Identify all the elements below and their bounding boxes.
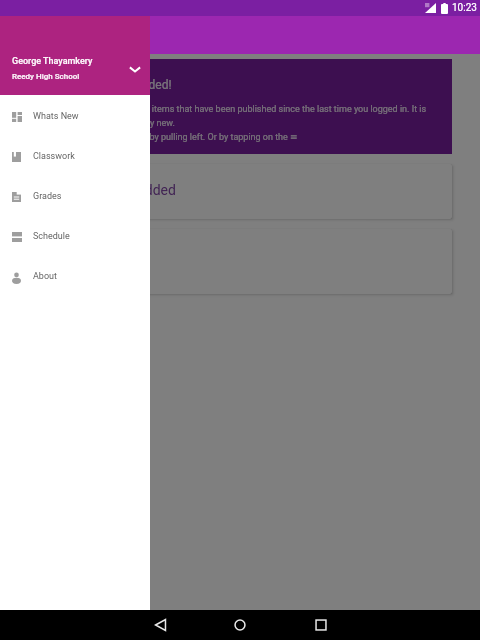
staticText: Whats New <box>33 111 79 122</box>
button[interactable]: Switch account <box>127 61 143 77</box>
staticText: These are all the brand new items that h… <box>40 104 427 142</box>
staticText: Some New Items Added! <box>40 78 172 92</box>
staticText: George Thayamkery <box>12 56 93 67</box>
button[interactable]: Grades <box>0 176 150 216</box>
staticText: Classwork <box>33 151 75 162</box>
staticText: Reedy High School <box>12 72 80 81</box>
button[interactable]: Home <box>232 617 248 633</box>
staticText: Schedule <box>33 231 70 242</box>
staticText: Grades <box>33 191 62 202</box>
button[interactable] <box>28 229 452 294</box>
button[interactable]: Recent apps <box>313 617 329 633</box>
staticText: 10:23 <box>452 2 477 14</box>
staticText: About <box>33 271 57 282</box>
button[interactable]: Classwork <box>0 136 150 176</box>
button[interactable]: No New Items Added <box>28 164 452 219</box>
button[interactable]: About <box>0 256 150 296</box>
button[interactable]: George Thayamkery <box>0 16 150 95</box>
button[interactable]: Schedule <box>0 216 150 256</box>
button[interactable]: Back <box>153 617 169 633</box>
staticText: No New Items Added <box>44 182 176 198</box>
button[interactable]: Whats New <box>0 96 150 136</box>
